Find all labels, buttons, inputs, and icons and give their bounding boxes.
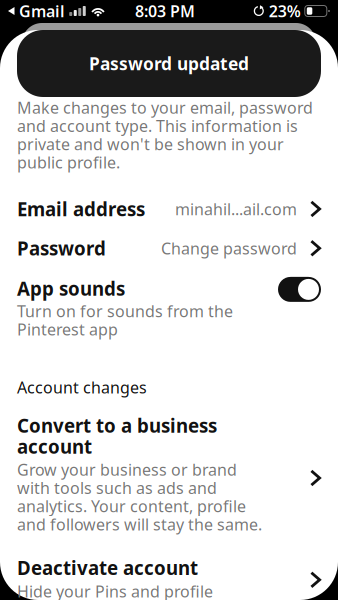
- staticText: Convert to a business: [17, 413, 217, 438]
- staticText: Gmail: [19, 0, 65, 22]
- staticText: Hide your Pins and profile: [17, 581, 213, 600]
- staticText: account: [17, 434, 92, 459]
- staticText: minahil...ail.com: [175, 198, 297, 219]
- staticText: public profile.: [17, 152, 120, 173]
- button[interactable]: Password: [0, 229, 338, 268]
- staticText: Deactivate account: [17, 555, 198, 580]
- staticText: analytics. Your content, profile: [17, 495, 246, 517]
- staticText: and account type. This information is: [17, 115, 298, 136]
- staticText: Make changes to your email, password: [17, 97, 313, 118]
- button[interactable]: Email address: [0, 189, 338, 229]
- staticText: 8:03 PM: [135, 0, 195, 22]
- staticText: Pinterest app: [17, 319, 118, 340]
- staticText: Password: [17, 236, 106, 261]
- staticText: Change password: [161, 238, 297, 259]
- staticText: 23%: [269, 0, 301, 22]
- staticText: and followers will stay the same.: [17, 514, 262, 535]
- staticText: Turn on for sounds from the: [17, 300, 233, 322]
- button[interactable]: App sounds: [278, 277, 321, 302]
- staticText: Account changes: [17, 377, 147, 398]
- staticText: Grow your business or brand: [17, 459, 237, 480]
- staticText: Password updated: [89, 52, 249, 75]
- staticText: private and won't be shown in your: [17, 133, 284, 155]
- staticText: Email address: [17, 197, 145, 221]
- staticText: with tools such as ads and: [17, 477, 217, 498]
- staticText: App sounds: [17, 276, 125, 301]
